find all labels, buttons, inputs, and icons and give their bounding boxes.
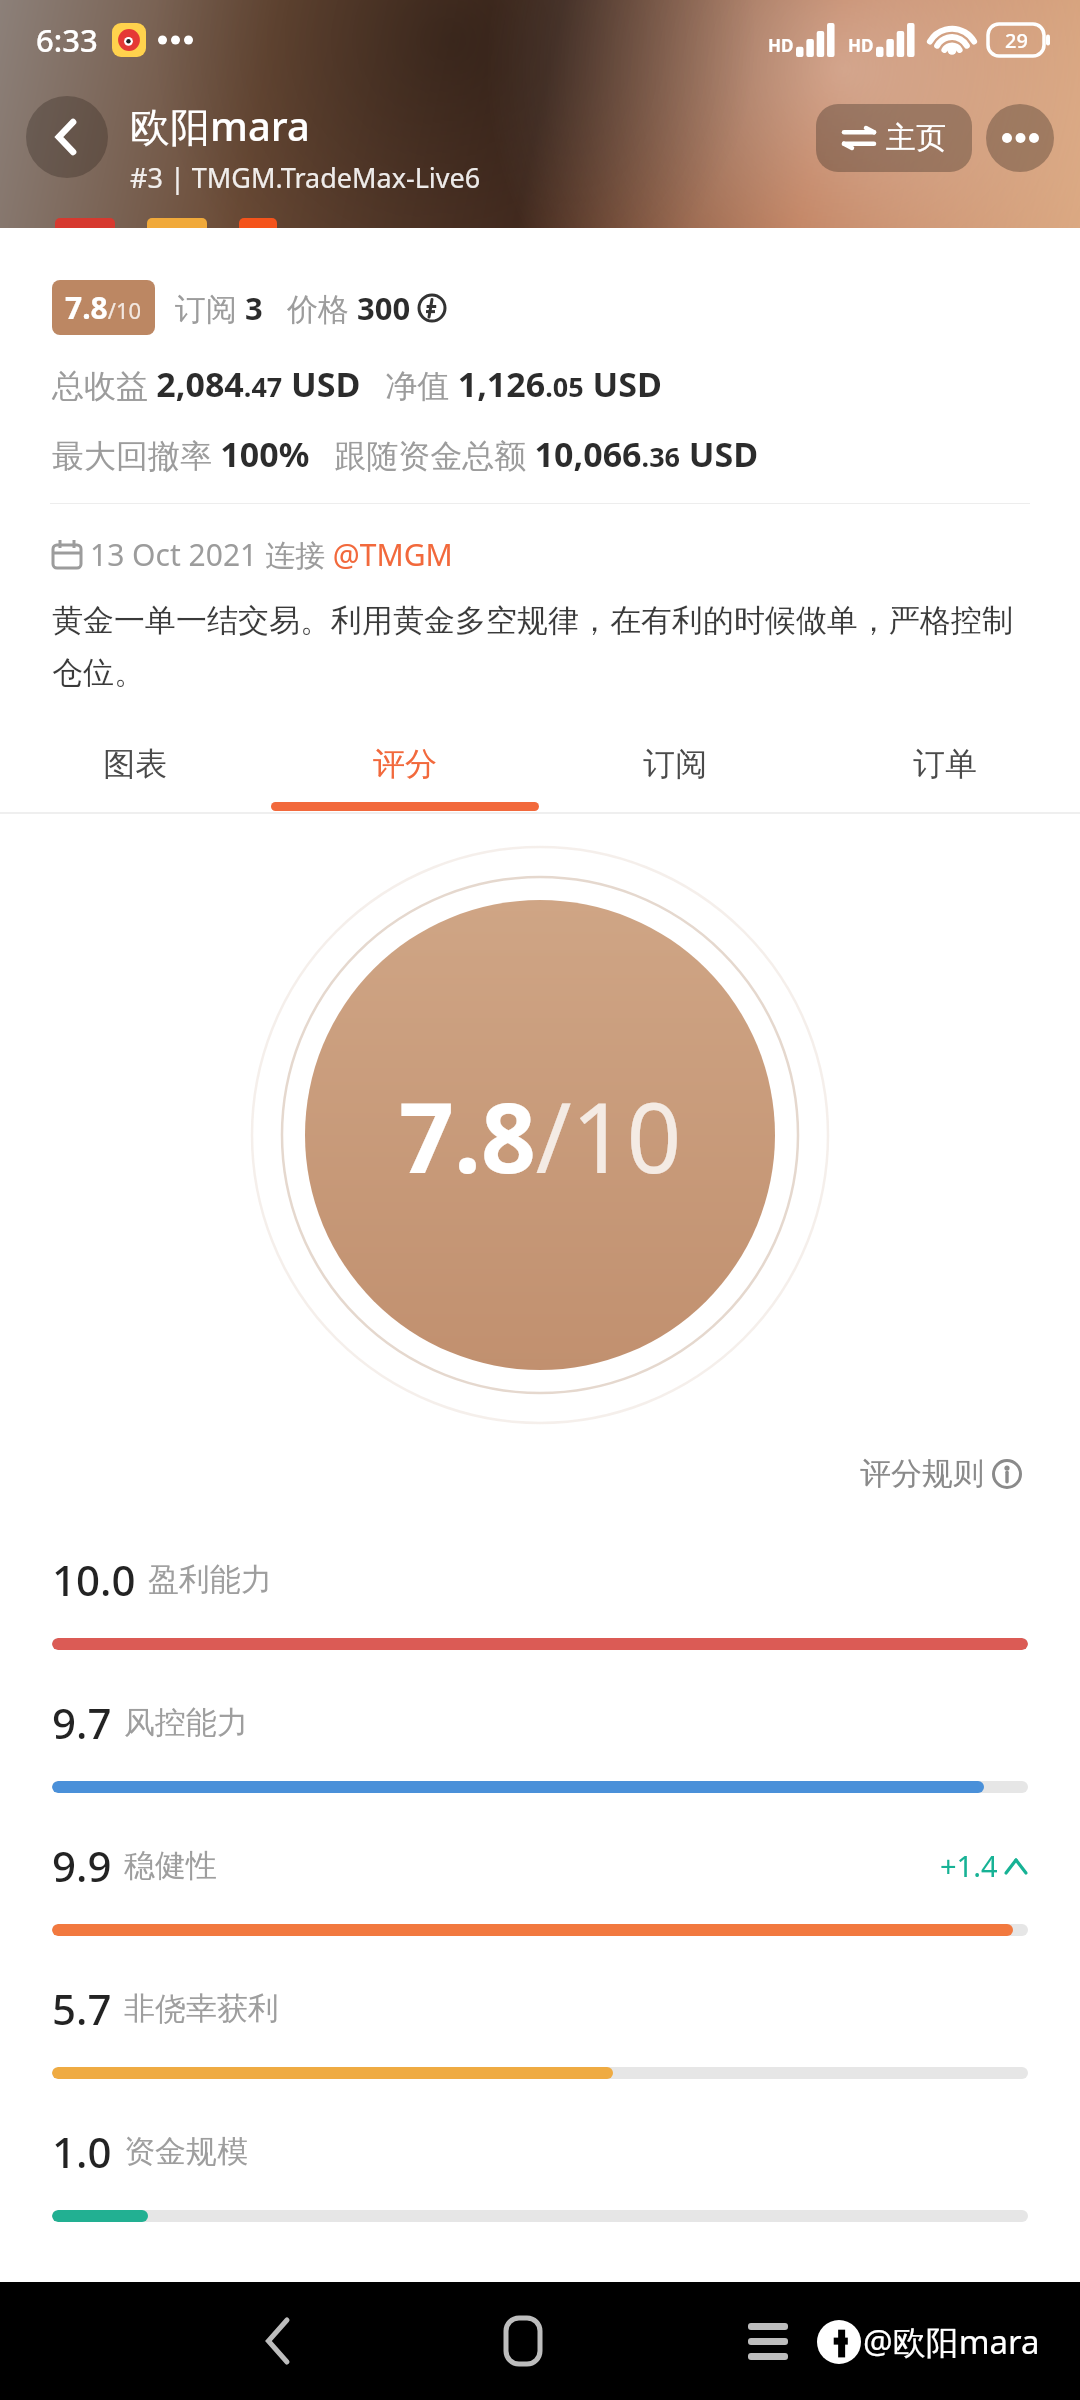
button[interactable]: Recent apps bbox=[723, 2296, 813, 2386]
staticText: 29 bbox=[1005, 27, 1028, 54]
button[interactable]: 9.7 bbox=[0, 1676, 1080, 1819]
button[interactable]: Back bbox=[26, 96, 108, 178]
button[interactable]: 评分 bbox=[270, 726, 540, 802]
button[interactable]: 10.0 bbox=[0, 1533, 1080, 1676]
staticText: 风控能力 bbox=[124, 1703, 248, 1742]
staticText: 评分规则 bbox=[860, 1454, 984, 1493]
staticText: 稳健性 bbox=[124, 1846, 217, 1885]
staticText: 9.7 bbox=[52, 1694, 112, 1751]
staticText: 非侥幸获利 bbox=[124, 1989, 279, 2028]
staticText: 订阅 bbox=[643, 744, 707, 784]
staticText: 7.8/10 bbox=[65, 287, 142, 328]
button[interactable]: 主页 bbox=[816, 104, 972, 172]
staticText: 1.0 bbox=[52, 2123, 112, 2180]
staticText: 评分 bbox=[373, 744, 437, 784]
staticText: 5.7 bbox=[52, 1980, 112, 2037]
button[interactable]: 1.0 bbox=[0, 2105, 1080, 2248]
staticText: #3 | TMGM.TradeMax-Live6 bbox=[130, 159, 481, 196]
button[interactable]: 订阅 bbox=[540, 726, 810, 802]
staticText: 6:33 bbox=[36, 19, 98, 61]
staticText: 订阅 3 价格 300 bbox=[175, 287, 411, 329]
staticText: 欧阳mara bbox=[130, 98, 310, 153]
button[interactable]: More options bbox=[986, 104, 1054, 172]
button[interactable]: Back bbox=[233, 2296, 323, 2386]
staticText: 黄金一单一结交易。利用黄金多空规律，在有利的时候做单，严格控制仓位。 bbox=[52, 601, 1028, 692]
button[interactable]: 图表 bbox=[0, 726, 270, 802]
button[interactable]: 评分规则 bbox=[854, 1448, 1028, 1499]
staticText: +1.4 bbox=[940, 1846, 998, 1885]
staticText: 最大回撤率 100% 跟随资金总额 10,066.36 USD bbox=[52, 431, 759, 477]
staticText: 10.0 bbox=[52, 1551, 136, 1608]
staticText: 图表 bbox=[103, 744, 167, 784]
staticText: 主页 bbox=[886, 119, 946, 157]
button[interactable]: 订单 bbox=[810, 726, 1080, 802]
button[interactable]: Home bbox=[478, 2296, 568, 2386]
staticText: 13 Oct 2021 连接 @TMGM bbox=[90, 534, 453, 575]
staticText: @欧阳mara bbox=[863, 2319, 1040, 2364]
staticText: 订单 bbox=[913, 744, 977, 784]
staticText: 盈利能力 bbox=[148, 1560, 272, 1599]
button[interactable]: 5.7 bbox=[0, 1962, 1080, 2105]
button[interactable]: 9.9 bbox=[0, 1819, 1080, 1962]
staticText: 资金规模 bbox=[124, 2132, 248, 2171]
staticText: 总收益 2,084.47 USD 净值 1,126.05 USD bbox=[52, 361, 662, 407]
staticText: 7.8/10 bbox=[399, 1070, 682, 1201]
staticText: HD bbox=[768, 34, 794, 57]
staticText: 9.9 bbox=[52, 1837, 112, 1894]
staticText: HD bbox=[848, 34, 874, 57]
